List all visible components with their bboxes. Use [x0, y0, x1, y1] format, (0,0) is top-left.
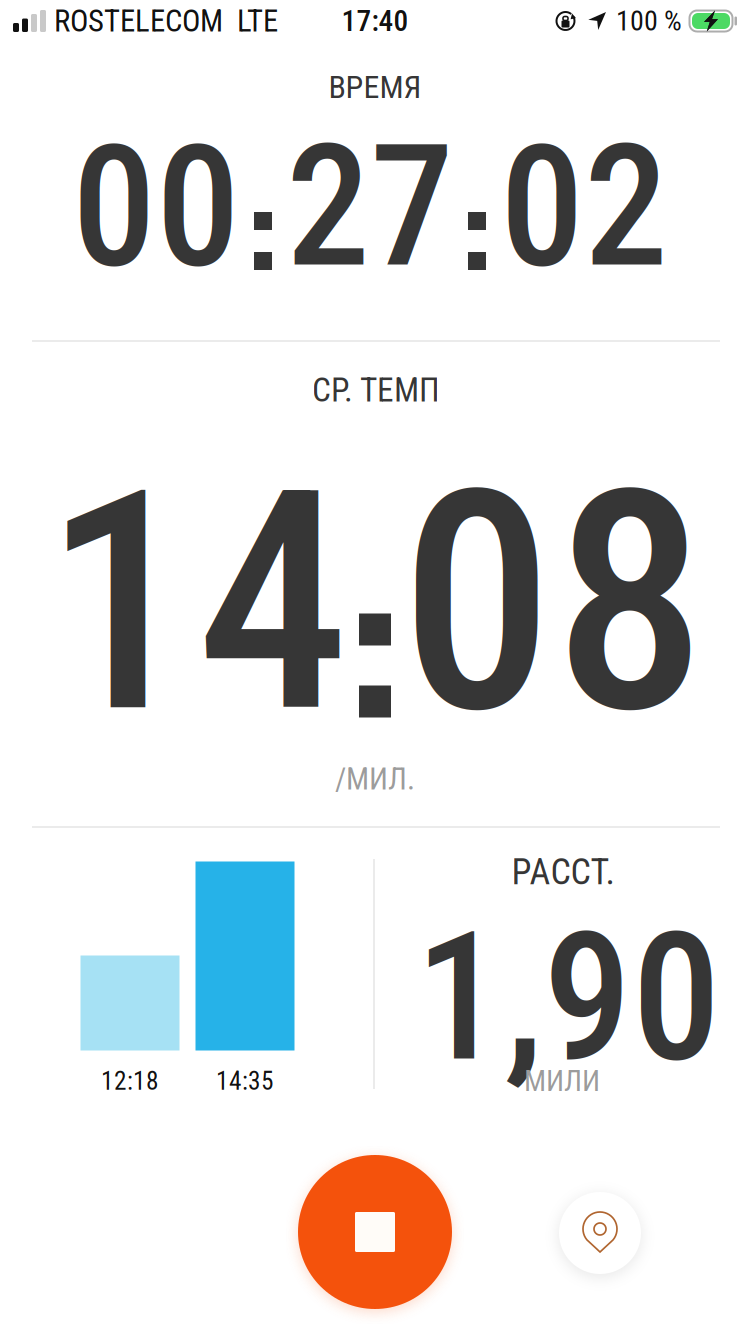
staticText: ROSTELECOM LTE [54, 3, 278, 39]
staticText: ВРЕМЯ [328, 68, 421, 106]
staticText: 14 [43, 424, 349, 782]
staticText: РАССТ. [511, 851, 614, 893]
staticText: 100 % [616, 5, 682, 37]
staticText: 02 [500, 109, 668, 305]
staticText: 14:35 [216, 1066, 274, 1096]
staticText: 17:40 [341, 4, 408, 38]
staticText: 00 [72, 109, 240, 305]
staticText: МИЛИ [524, 1064, 600, 1098]
staticText: СР. ТЕМП [312, 370, 440, 410]
staticText: 27 [286, 109, 454, 305]
button[interactable]: Stop workout [298, 1155, 452, 1309]
staticText: /МИЛ. [335, 761, 415, 797]
staticText: 12:18 [101, 1066, 159, 1096]
staticText: 08 [400, 424, 706, 782]
staticText: 1,90 [415, 894, 721, 1102]
button[interactable]: Show map [559, 1192, 641, 1274]
